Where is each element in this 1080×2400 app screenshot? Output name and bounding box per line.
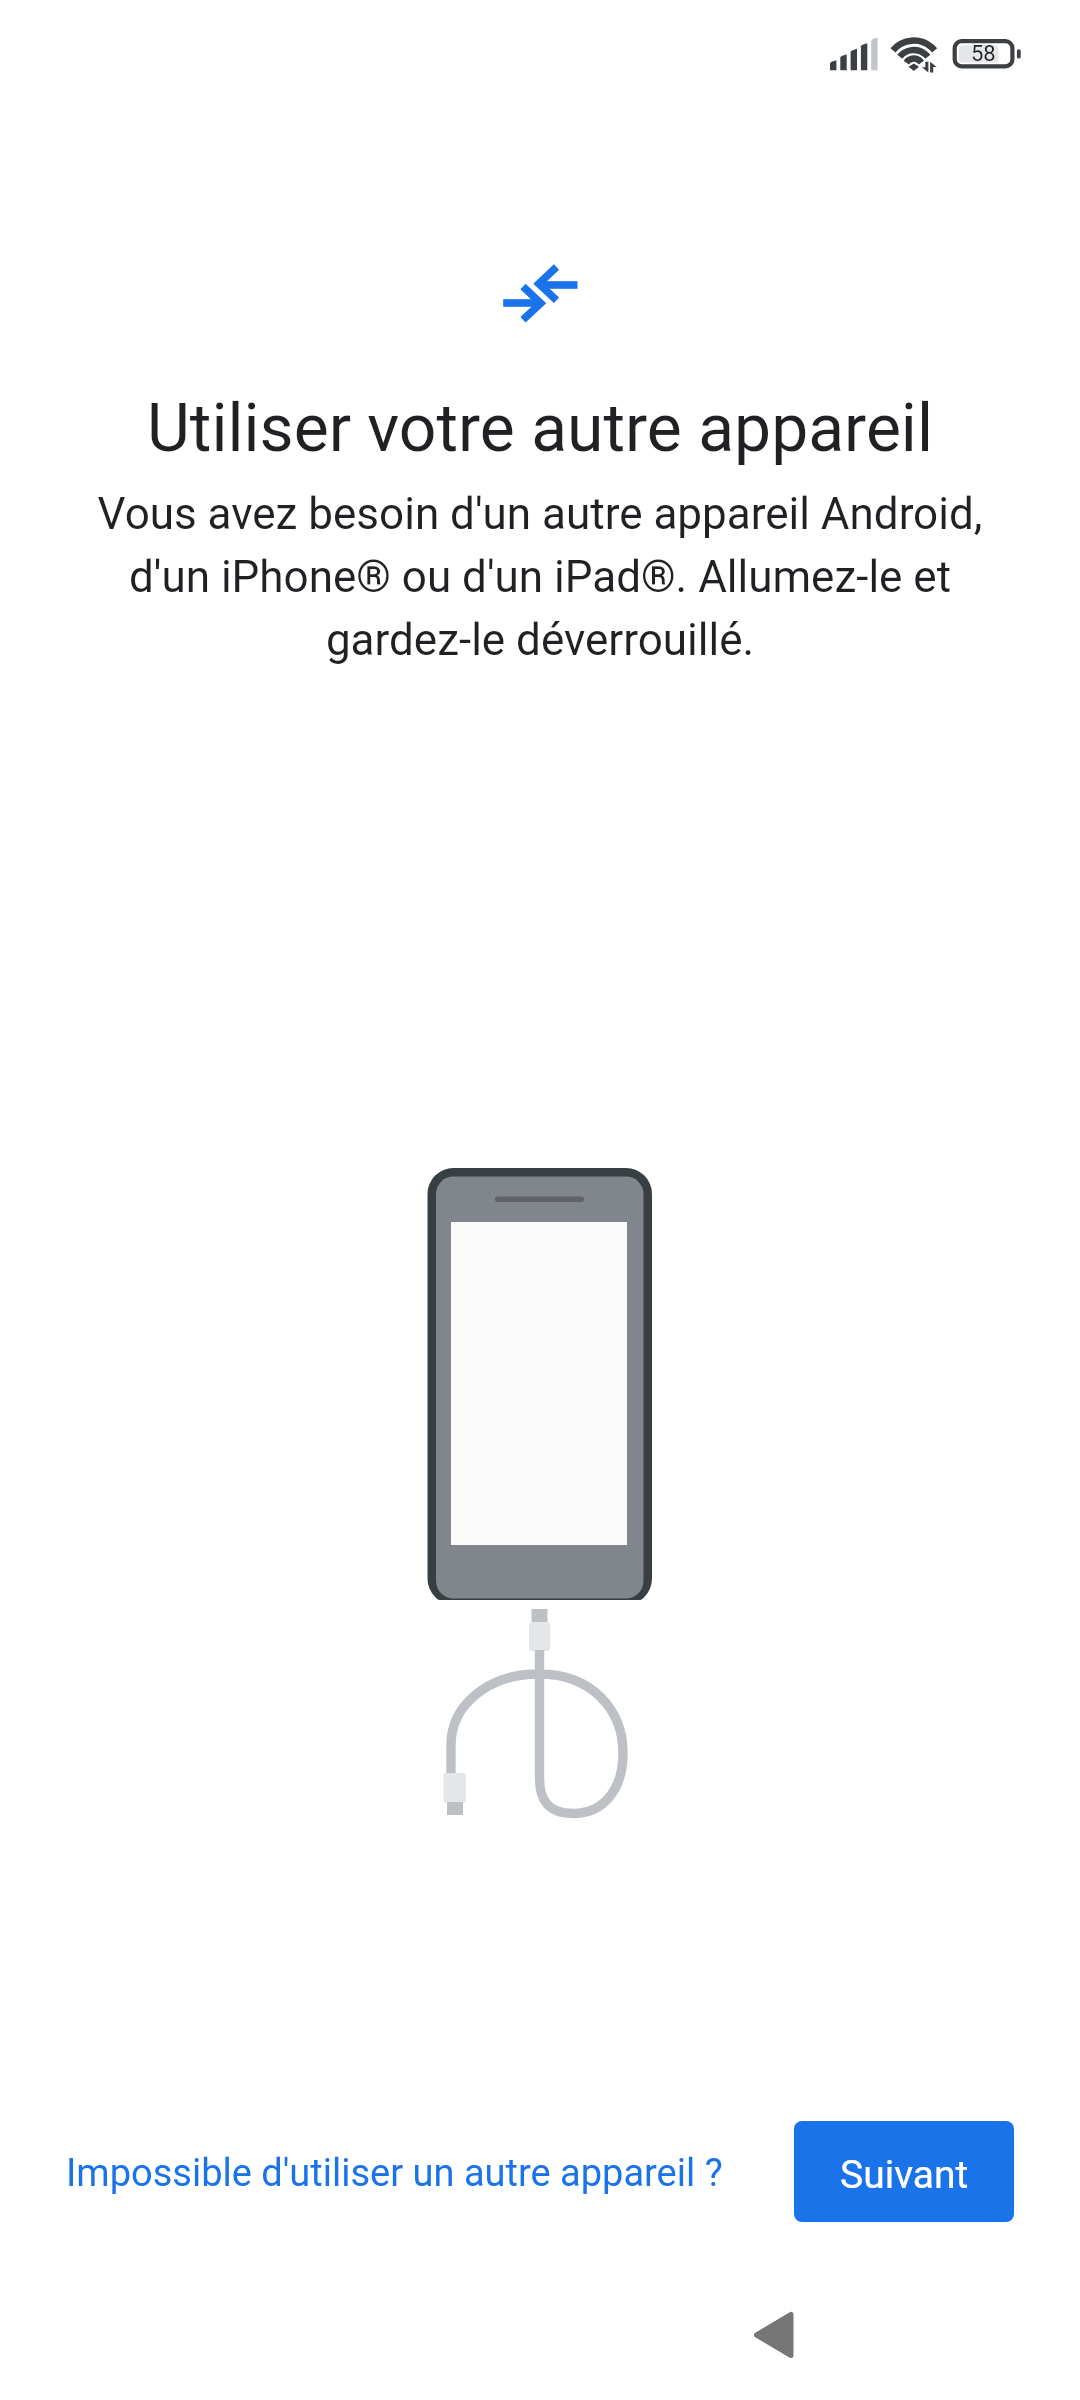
staticText: Suivant [840,2152,969,2198]
staticText: 58 [971,41,996,67]
staticText: Utiliser votre autre appareil [0,390,1080,467]
staticText: Vous avez besoin d'un autre appareil And… [80,488,1000,666]
button[interactable]: Suivant [794,2121,1014,2222]
button[interactable]: Back [713,2275,833,2395]
button[interactable]: Impossible d'utiliser un autre appareil … [47,2133,742,2214]
staticText: Impossible d'utiliser un autre appareil … [66,2151,723,2196]
